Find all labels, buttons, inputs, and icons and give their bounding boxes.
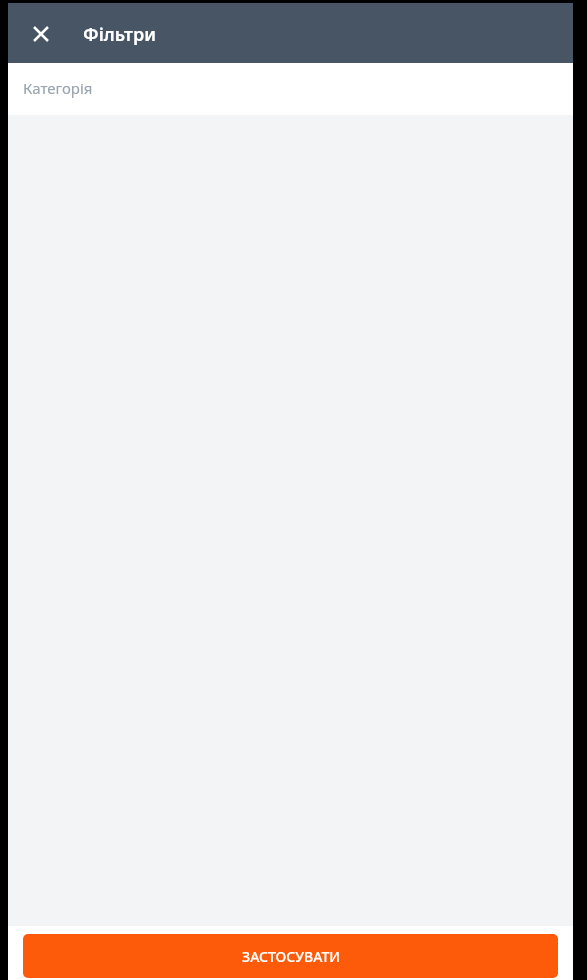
button[interactable]: Close [21,14,61,54]
button[interactable]: ЗАСТОСУВАТИ [23,934,558,978]
staticText: Фільтри [83,22,156,47]
staticText: Категорія [23,78,93,98]
staticText: ЗАСТОСУВАТИ [242,947,340,966]
button[interactable]: Категорія [8,63,573,115]
